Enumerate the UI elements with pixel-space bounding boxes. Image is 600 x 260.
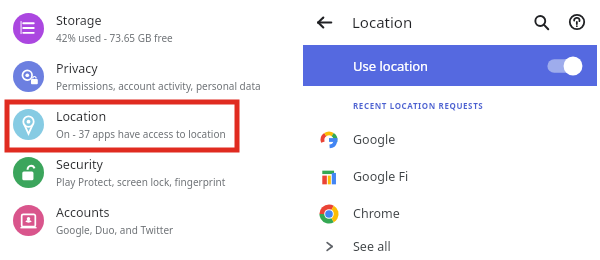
staticText: RECENT LOCATION REQUESTS [353, 100, 484, 111]
staticText: Storage [56, 12, 102, 29]
staticText: Location [56, 108, 107, 125]
staticText: Google [353, 131, 396, 148]
button[interactable]: Google Fi [300, 158, 600, 195]
staticText: Privacy [56, 60, 98, 77]
button[interactable]: See all [300, 232, 600, 260]
staticText: On - 37 apps have access to location [56, 127, 226, 141]
staticText: Location [352, 12, 413, 32]
button[interactable]: Privacy [0, 52, 300, 100]
button[interactable]: Accounts [0, 196, 300, 244]
button[interactable]: Google [300, 121, 600, 158]
button[interactable]: Storage [0, 4, 300, 52]
staticText: Chrome [353, 205, 400, 222]
staticText: Google Fi [353, 168, 409, 185]
staticText: See all [353, 238, 391, 255]
button[interactable]: Chrome [300, 195, 600, 232]
button[interactable]: Use location [303, 45, 597, 86]
button[interactable]: Security [0, 148, 300, 196]
button[interactable]: Location [0, 100, 300, 148]
button[interactable]: Help [562, 7, 592, 37]
button[interactable]: Back [310, 8, 338, 36]
staticText: Accounts [56, 204, 110, 221]
staticText: 42% used - 73.65 GB free [56, 31, 173, 45]
staticText: Use location [353, 57, 429, 75]
staticText: Permissions, account activity, personal … [56, 79, 261, 93]
staticText: Play Protect, screen lock, fingerprint [56, 175, 226, 189]
button[interactable]: Search [526, 7, 556, 37]
staticText: Security [56, 156, 103, 173]
staticText: Google, Duo, and Twitter [56, 223, 174, 237]
